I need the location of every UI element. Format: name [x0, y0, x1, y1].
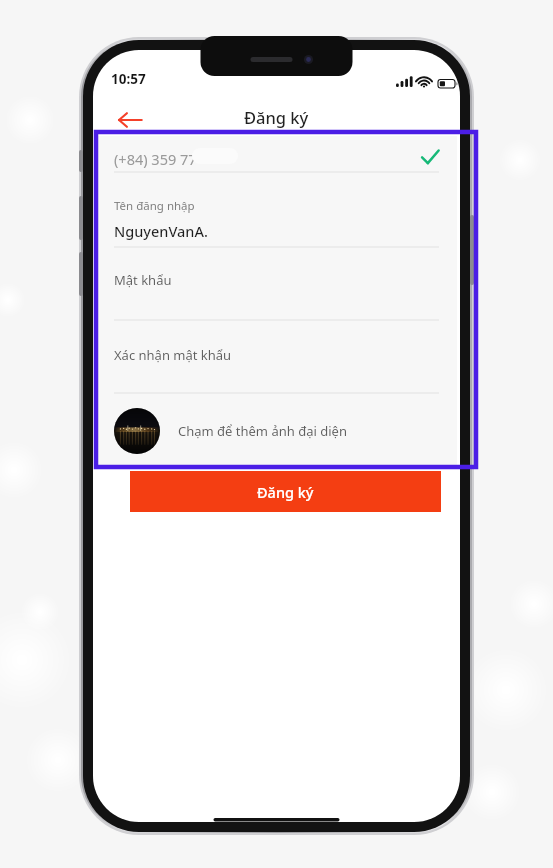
- staticText: 10:57: [111, 70, 146, 88]
- button[interactable]: Chạm để thêm ảnh đại diện: [114, 404, 439, 458]
- staticText: Chạm để thêm ảnh đại diện: [178, 422, 347, 440]
- staticText: Xác nhận mật khẩu: [114, 346, 232, 364]
- staticText: Đăng ký: [244, 106, 309, 128]
- staticText: (+84) 359 77: [114, 149, 197, 169]
- button[interactable]: Back: [113, 103, 147, 137]
- button[interactable]: Verified: [417, 144, 443, 170]
- button[interactable]: Đăng ký: [130, 471, 441, 512]
- staticText: NguyenVanA.: [114, 221, 208, 241]
- staticText: Mật khẩu: [114, 271, 172, 289]
- staticText: Đăng ký: [257, 482, 314, 502]
- staticText: Tên đăng nhập: [114, 198, 195, 214]
